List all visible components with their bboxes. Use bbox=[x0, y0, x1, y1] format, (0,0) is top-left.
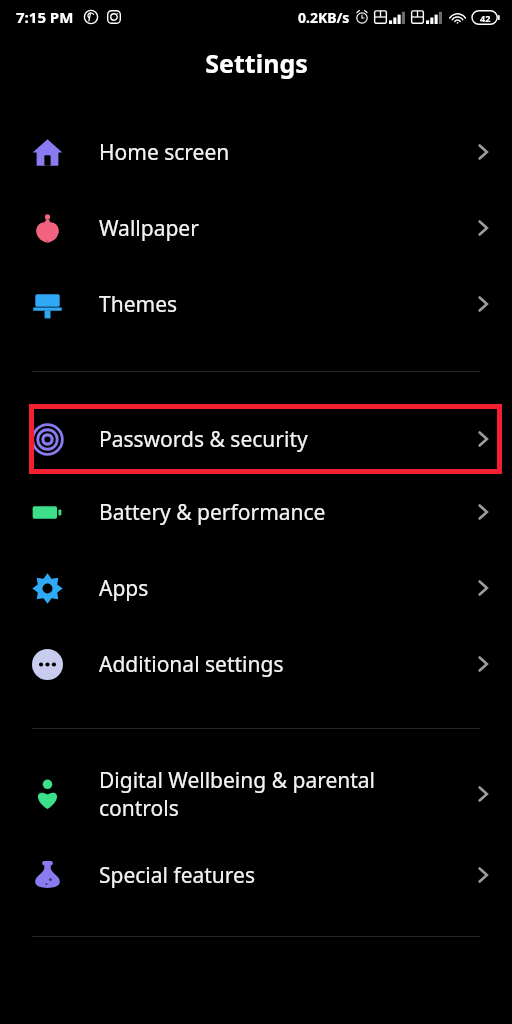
other: Additional settings bbox=[31, 648, 64, 681]
other: Passwords and security bbox=[31, 423, 64, 456]
other: Wallpaper bbox=[31, 212, 64, 245]
button[interactable]: Wallpaper bbox=[0, 190, 512, 266]
button[interactable]: Special features bbox=[0, 837, 512, 913]
staticText: Apps bbox=[99, 574, 470, 603]
staticText: Home screen bbox=[99, 138, 470, 167]
staticText: Battery & performance bbox=[99, 498, 470, 527]
button[interactable]: Additional settings bbox=[0, 626, 512, 702]
staticText: Additional settings bbox=[99, 650, 470, 679]
staticText: Themes bbox=[99, 290, 470, 319]
staticText: Settings bbox=[205, 46, 308, 80]
staticText: Passwords & security bbox=[99, 425, 470, 454]
other: Home screen bbox=[31, 136, 64, 169]
button[interactable]: Themes bbox=[0, 266, 512, 342]
button[interactable]: Apps bbox=[0, 550, 512, 626]
staticText: 42 bbox=[480, 12, 491, 24]
other: Digital Wellbeing bbox=[31, 778, 64, 811]
other: Apps bbox=[31, 572, 64, 605]
staticText: 7:15 PM bbox=[16, 7, 74, 27]
button[interactable]: Passwords and security bbox=[0, 404, 512, 474]
button[interactable]: Digital Wellbeing bbox=[0, 751, 512, 837]
button[interactable]: Home screen bbox=[0, 114, 512, 190]
staticText: 0.2KB/s bbox=[298, 8, 350, 27]
staticText: Digital Wellbeing & parental controls bbox=[99, 766, 470, 822]
staticText: Special features bbox=[99, 861, 470, 890]
button[interactable]: Battery and performance bbox=[0, 474, 512, 550]
other: Themes bbox=[31, 288, 64, 321]
other: Battery and performance bbox=[31, 496, 64, 529]
other: Special features bbox=[31, 859, 64, 892]
staticText: Wallpaper bbox=[99, 214, 470, 243]
